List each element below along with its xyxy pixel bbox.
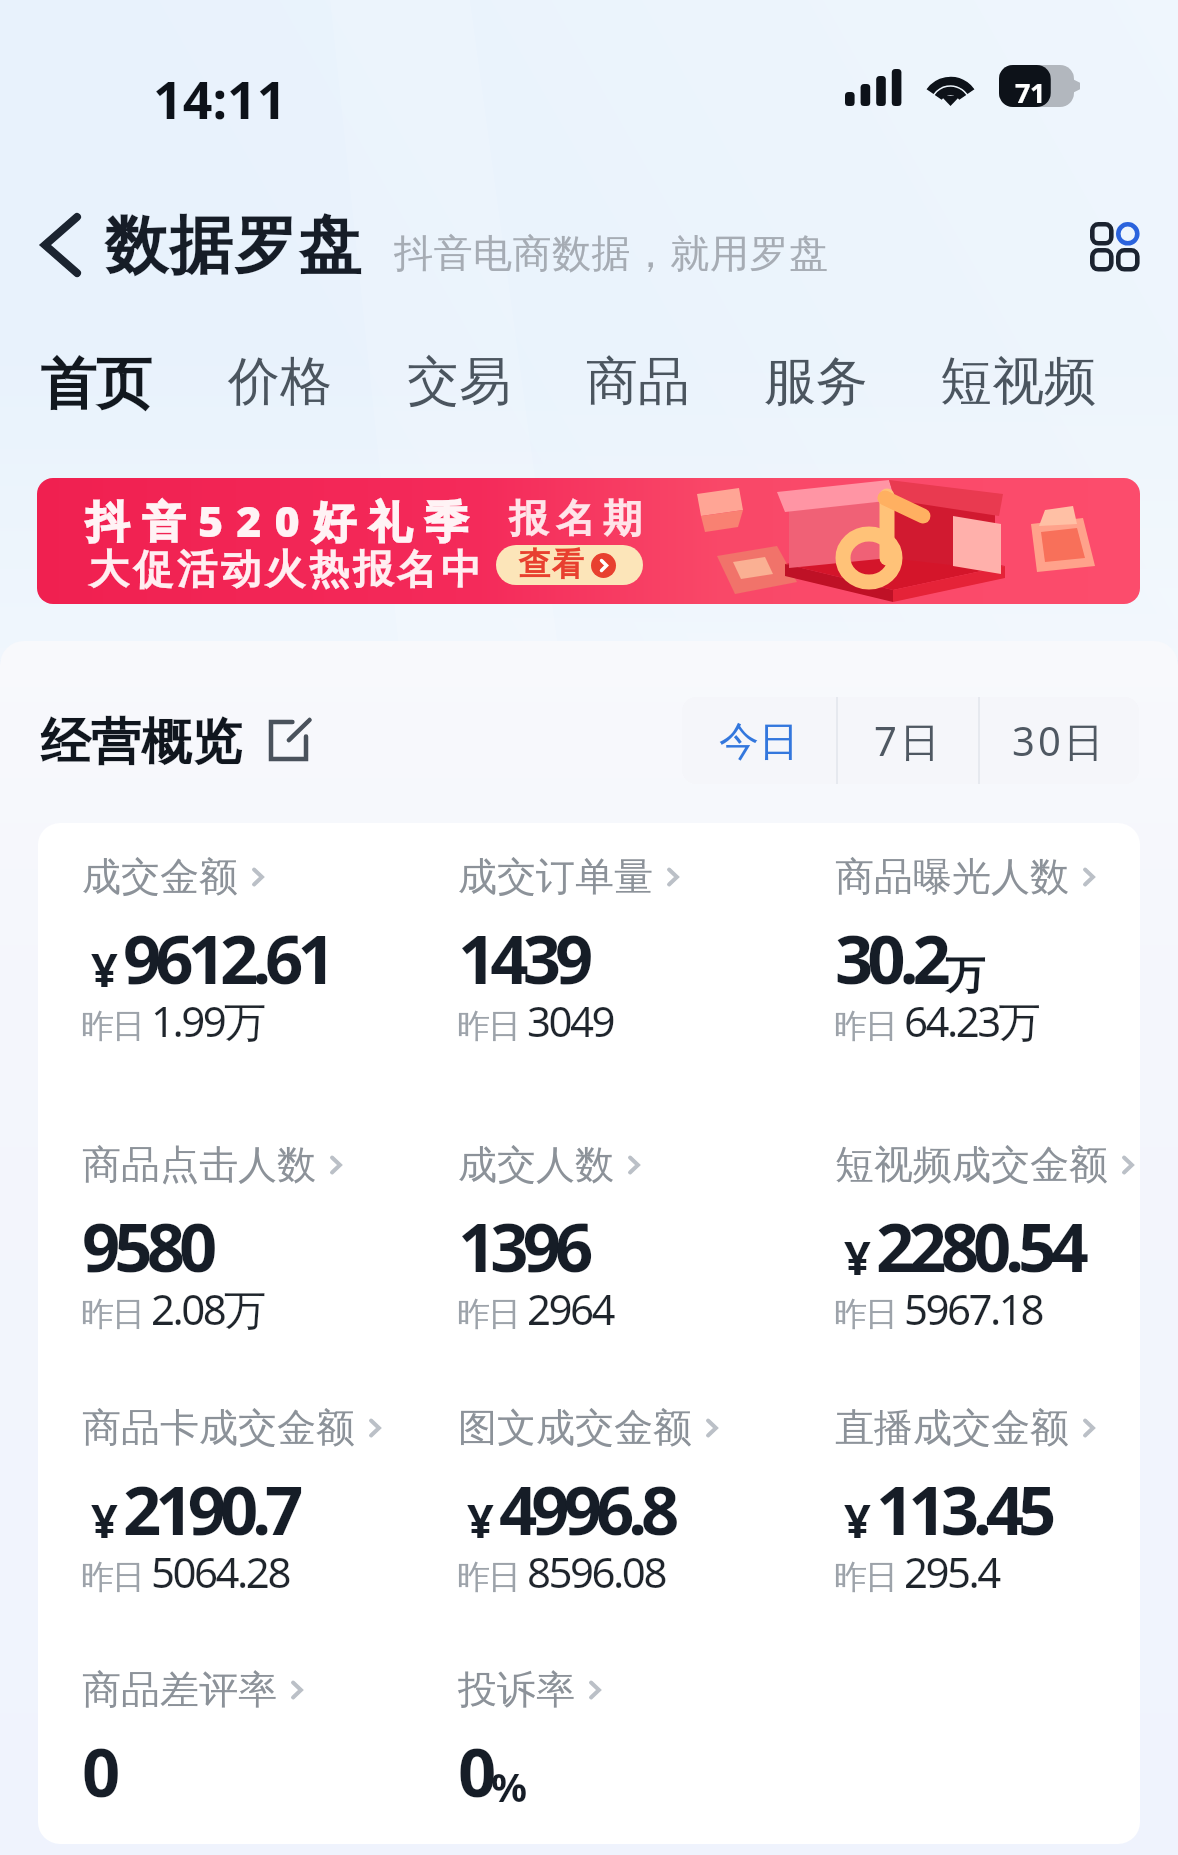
staticText: % [491,1759,528,1813]
staticText: 8596.08 [527,1543,665,1600]
staticText: 昨日 [458,1293,520,1335]
staticText: 短视频 [940,349,1096,415]
staticText: 短视频成交金额 [835,1140,1108,1189]
staticText: ¥ [844,1488,871,1552]
staticText: 大促活动火热报名中 [87,544,483,594]
staticText: 万 [945,950,985,1000]
button[interactable]: 服务 [764,349,868,415]
staticText: 直播成交金额 [835,1403,1069,1452]
staticText: 抖音电商数据，就用罗盘 [394,229,829,278]
button[interactable]: 今日 [682,697,836,784]
staticText: 7日 [874,713,943,768]
button[interactable]: 商品 [586,349,690,415]
button[interactable]: 查看 [496,545,643,585]
staticText: 0 [458,1725,491,1816]
button[interactable]: 成交订单量 [448,836,800,1076]
staticText: 昨日 [835,1556,897,1598]
button[interactable]: 成交人数 [448,1124,800,1364]
button[interactable]: Edit [258,711,318,771]
staticText: 昨日 [458,1005,520,1047]
staticText: 2190.7 [123,1463,298,1554]
staticText: 商品卡成交金额 [82,1403,355,1452]
staticText: 1.99万 [151,992,264,1049]
staticText: 成交金额 [82,852,238,901]
button[interactable]: 商品卡成交金额 [72,1387,424,1627]
staticText: 4996.8 [499,1463,674,1554]
button[interactable]: Back [28,205,94,285]
staticText: 商品差评率 [82,1665,277,1714]
staticText: 今日 [719,716,799,766]
staticText: 数据罗盘 [104,206,362,285]
staticText: 成交订单量 [458,852,653,901]
staticText: 昨日 [458,1556,520,1598]
staticText: 2964 [527,1280,614,1337]
staticText: 交易 [407,349,511,415]
button[interactable]: 30日 [980,697,1139,784]
staticText: 投诉率 [458,1665,575,1714]
staticText: 64.23万 [904,992,1039,1049]
staticText: ¥ [91,1488,118,1552]
button[interactable]: 交易 [407,349,511,415]
staticText: 9580 [82,1200,212,1291]
staticText: 5064.28 [151,1543,289,1600]
button[interactable]: 短视频成交金额 [825,1124,1177,1364]
staticText: 图文成交金额 [458,1403,692,1452]
button[interactable]: 成交金额 [72,836,424,1076]
button[interactable]: 抖音520好礼季 [37,478,1140,604]
staticText: 5967.18 [904,1280,1042,1337]
button[interactable]: 商品点击人数 [72,1124,424,1364]
staticText: 1396 [458,1200,588,1291]
staticText: 30.2 [835,912,945,1003]
staticText: 商品 [586,349,690,415]
staticText: 昨日 [82,1556,144,1598]
button[interactable]: Apps [1075,207,1151,283]
staticText: 30日 [1012,713,1107,768]
staticText: ¥ [844,1225,871,1289]
staticText: 查看 [518,545,584,584]
staticText: 昨日 [835,1005,897,1047]
staticText: 昨日 [82,1293,144,1335]
staticText: 71 [1015,74,1045,111]
button[interactable]: 商品差评率 [72,1649,424,1832]
staticText: 商品曝光人数 [835,852,1069,901]
button[interactable]: 7日 [838,697,978,784]
button[interactable]: 短视频 [940,349,1096,415]
staticText: 2280.54 [876,1200,1083,1291]
staticText: 昨日 [835,1293,897,1335]
staticText: 2.08万 [151,1280,264,1337]
staticText: 成交人数 [458,1140,614,1189]
staticText: 1439 [458,912,588,1003]
button[interactable]: 价格 [228,349,332,415]
staticText: 报名期 [505,494,646,543]
button[interactable]: 图文成交金额 [448,1387,800,1627]
staticText: 0 [82,1725,115,1816]
button[interactable]: 投诉率 [448,1649,800,1832]
staticText: 服务 [764,349,868,415]
staticText: 9612.61 [123,912,330,1003]
button[interactable]: 首页 [40,349,152,420]
staticText: ¥ [467,1488,494,1552]
staticText: 经营概览 [40,711,242,774]
staticText: 113.45 [876,1463,1051,1554]
button[interactable]: 直播成交金额 [825,1387,1177,1627]
staticText: 价格 [228,349,332,415]
staticText: 商品点击人数 [82,1140,316,1189]
staticText: 抖音520好礼季 [86,491,481,550]
staticText: 295.4 [904,1543,999,1600]
staticText: ¥ [91,937,118,1001]
staticText: 昨日 [82,1005,144,1047]
staticText: 首页 [40,349,152,420]
staticText: 3049 [527,992,614,1049]
button[interactable]: 商品曝光人数 [825,836,1177,1076]
staticText: 14:11 [153,63,287,134]
